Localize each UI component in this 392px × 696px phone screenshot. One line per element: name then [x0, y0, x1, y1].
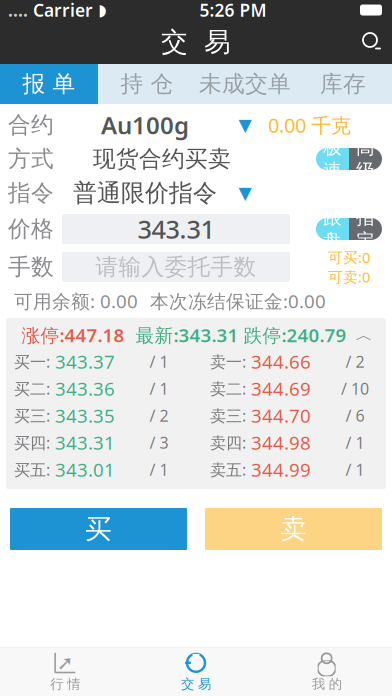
button[interactable]: 跟盘 [316, 218, 382, 240]
staticText: 手数 [8, 253, 54, 281]
staticText: 344.98 [246, 430, 311, 455]
staticText: / 10 [341, 378, 369, 399]
staticText: Carrier [28, 0, 98, 21]
staticText: 价格 [8, 215, 54, 243]
button[interactable]: 请输入委托手数 [62, 252, 290, 282]
staticText: 卖四: [210, 432, 246, 453]
staticText: 普通限价指令 [73, 178, 217, 208]
staticText: 我 的 [312, 676, 342, 692]
staticText: 本次冻结保证金:0.00 [150, 289, 326, 313]
staticText: ➚ [57, 651, 74, 674]
staticText: / 1 [149, 351, 168, 372]
staticText: 交 易 [161, 26, 231, 58]
staticText: 344.66 [246, 349, 311, 374]
staticText: ︿ [355, 324, 372, 346]
staticText: 交 易 [181, 676, 211, 692]
staticText: 买 [85, 513, 112, 545]
staticText: 0.00 千克 [268, 112, 351, 138]
staticText: 343.01 [50, 457, 115, 482]
staticText: 343.36 [50, 376, 115, 401]
staticText: / 1 [345, 432, 364, 453]
staticText: 卖 [280, 513, 307, 545]
staticText: 未成交单 [199, 70, 291, 98]
staticText: / 1 [149, 378, 168, 399]
button[interactable]: 报 单 [0, 64, 98, 104]
staticText: 344.99 [246, 457, 311, 482]
staticText: 卖三: [210, 405, 246, 426]
staticText: 343.35 [50, 403, 115, 428]
staticText: 跌停:240.79 [243, 323, 346, 347]
staticText: 买一: [14, 351, 50, 372]
staticText: ▼ [238, 115, 251, 135]
staticText: Au100g [101, 109, 189, 141]
staticText: / 2 [345, 351, 364, 372]
staticText: 343.37 [50, 349, 115, 374]
button[interactable]: Au100g [62, 108, 262, 142]
staticText: / 1 [149, 459, 168, 480]
button[interactable]: 库存 [294, 64, 392, 104]
staticText: 344.70 [246, 403, 311, 428]
staticText: 方式 [8, 145, 54, 173]
staticText: .... [8, 0, 28, 21]
staticText: 涨停:447.18 [21, 323, 124, 347]
button[interactable]: 持 仓 [98, 64, 196, 104]
button[interactable]: 收起 [350, 324, 378, 346]
staticText: 库存 [320, 70, 366, 98]
staticText: 卖一: [210, 351, 246, 372]
staticText: 指令 [8, 179, 54, 207]
button[interactable]: 极速 [316, 148, 382, 170]
staticText: ◗ [98, 1, 106, 19]
staticText: / 3 [149, 432, 168, 453]
staticText: 可买:0 [328, 247, 370, 267]
staticText: 最新:343.31 [135, 323, 238, 347]
staticText: ▼ [238, 183, 251, 203]
button[interactable]: 未成交单 [196, 64, 294, 104]
staticText: 报 单 [22, 70, 75, 98]
staticText: 5:26 PM [199, 0, 266, 21]
button[interactable]: 搜索 [352, 22, 392, 62]
staticText: / 6 [345, 405, 364, 426]
staticText: 现货合约买卖 [93, 145, 231, 173]
button[interactable]: 343.31 [62, 214, 290, 244]
button[interactable]: ➚ [0, 648, 131, 696]
staticText: 343.31 [50, 430, 115, 455]
staticText: 跟盘 [323, 206, 342, 252]
staticText: 行 情 [50, 676, 80, 692]
staticText: 持 仓 [120, 70, 173, 98]
staticText: 卖二: [210, 378, 246, 399]
staticText: 可用余额: 0.00 [14, 289, 138, 313]
staticText: 343.31 [137, 212, 214, 246]
staticText: 请输入委托手数 [95, 253, 256, 281]
staticText: / 1 [345, 459, 364, 480]
staticText: / 2 [149, 405, 168, 426]
button[interactable]: 卖 [205, 508, 382, 550]
staticText: 卖五: [210, 459, 246, 480]
button[interactable]: 交 易 [131, 648, 261, 696]
staticText: 344.69 [246, 376, 311, 401]
staticText: 极速 [323, 136, 342, 182]
button[interactable]: 买 [10, 508, 187, 550]
staticText: 可卖:0 [328, 267, 370, 286]
button[interactable]: 普通限价指令 [62, 176, 262, 210]
button[interactable]: 我 的 [261, 648, 392, 696]
staticText: 高级 [356, 136, 375, 182]
staticText: 指定 [356, 206, 375, 252]
staticText: 买二: [14, 378, 50, 399]
staticText: 买三: [14, 405, 50, 426]
staticText: 合约 [8, 111, 54, 139]
staticText: 买四: [14, 432, 50, 453]
staticText: 买五: [14, 459, 50, 480]
